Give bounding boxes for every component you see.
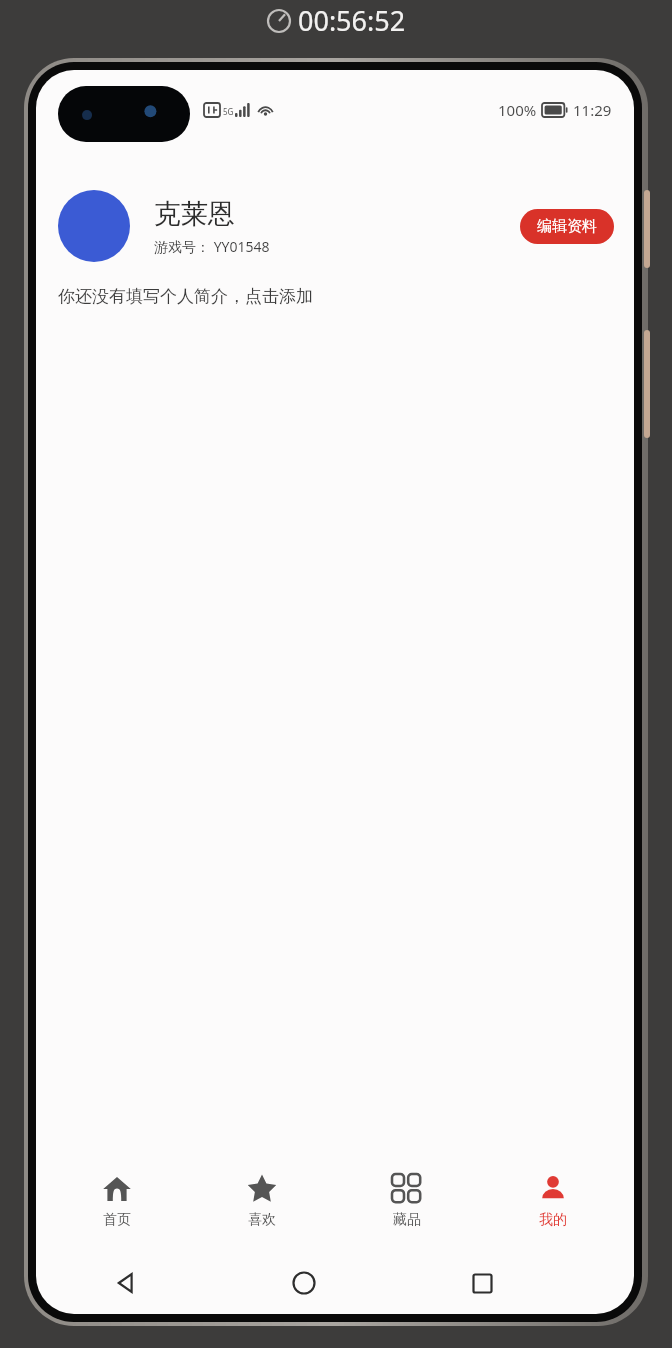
staticText: 你还没有填写个人简介，点击添加 [58, 286, 313, 307]
button[interactable]: Home [214, 1252, 393, 1314]
staticText: 喜欢 [248, 1211, 276, 1229]
button[interactable]: 藏品 [334, 1160, 480, 1252]
button[interactable]: 我的 [480, 1160, 626, 1252]
staticText: 编辑资料 [537, 217, 597, 236]
button[interactable]: Recent apps [393, 1252, 572, 1314]
staticText: 藏品 [393, 1211, 421, 1229]
staticText: 首页 [103, 1211, 131, 1229]
staticText: 5G [223, 106, 234, 117]
staticText: 我的 [539, 1211, 567, 1229]
staticText: 100% [498, 100, 537, 120]
button[interactable]: 喜欢 [189, 1160, 334, 1252]
button[interactable]: Avatar [58, 190, 130, 262]
staticText: 克莱恩 [154, 197, 235, 231]
button[interactable]: 你还没有填写个人简介，点击添加 [36, 284, 634, 311]
staticText: 游戏号： YY01548 [154, 237, 270, 256]
button[interactable]: 编辑资料 [520, 209, 614, 244]
staticText: 00:56:52 [298, 2, 406, 39]
staticText: 11:29 [573, 100, 612, 120]
button[interactable]: Back [36, 1252, 214, 1314]
button[interactable]: 首页 [44, 1160, 189, 1252]
